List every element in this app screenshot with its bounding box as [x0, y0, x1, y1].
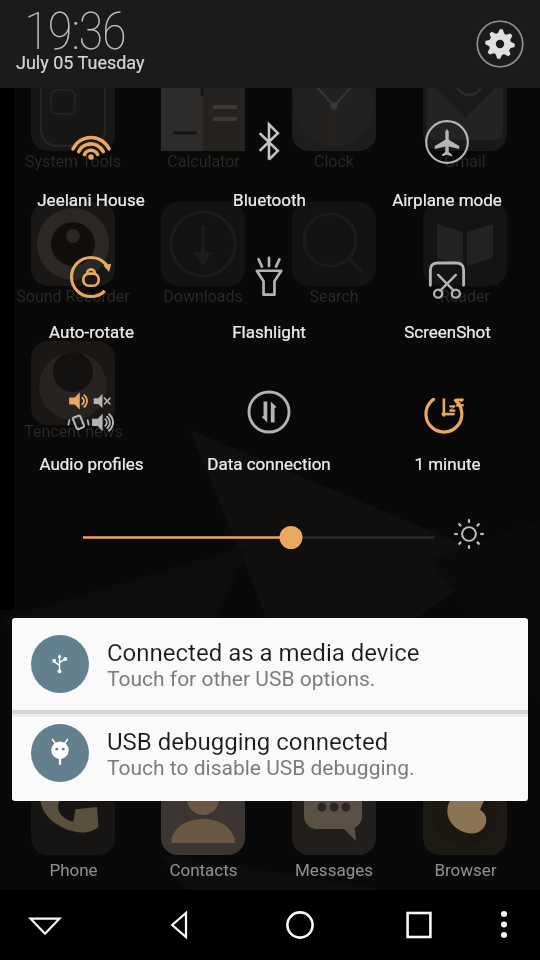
staticText: ScreenShot: [404, 322, 491, 342]
staticText: Bluetooth: [233, 190, 306, 210]
button[interactable]: Data connection: [180, 364, 358, 474]
button[interactable]: Audio profiles: [2, 364, 180, 474]
staticText: Downloads: [163, 287, 243, 306]
staticText: Audio profiles: [39, 454, 144, 474]
button[interactable]: Brightness: [0, 500, 540, 575]
button[interactable]: 1 minute: [358, 364, 536, 474]
staticText: Sound Recorder: [16, 287, 130, 306]
staticText: 19:36: [24, 1, 126, 62]
staticText: System Tools: [25, 152, 121, 171]
staticText: Contacts: [169, 860, 238, 880]
button[interactable]: Home: [258, 890, 342, 960]
staticText: Connected as a media device: [107, 639, 420, 667]
staticText: Jeelani House: [37, 190, 145, 210]
button[interactable]: Auto-rotate: [2, 229, 180, 339]
button[interactable]: Airplane mode: [358, 94, 536, 204]
button[interactable]: USB debugging connected: [12, 717, 528, 801]
button[interactable]: More: [462, 890, 540, 960]
staticText: Clock: [314, 152, 354, 171]
staticText: July 05 Tuesday: [16, 52, 145, 73]
button[interactable]: Connected as a media device: [12, 618, 528, 710]
button[interactable]: Flashlight: [180, 229, 358, 339]
staticText: Search: [309, 287, 359, 306]
staticText: Touch to disable USB debugging.: [107, 756, 415, 781]
staticText: Phone: [49, 860, 98, 880]
staticText: Browser: [434, 860, 497, 880]
button[interactable]: Bluetooth: [180, 94, 358, 204]
staticText: Flashlight: [232, 322, 306, 342]
button[interactable]: ScreenShot: [358, 229, 536, 339]
button[interactable]: Hide: [3, 890, 87, 960]
button[interactable]: Back: [138, 890, 222, 960]
staticText: Auto-rotate: [49, 322, 134, 342]
staticText: Airplane mode: [392, 190, 502, 210]
staticText: Gmail: [444, 152, 486, 171]
staticText: Messages: [295, 860, 373, 880]
button[interactable]: Settings: [476, 20, 524, 68]
staticText: Data connection: [207, 454, 331, 474]
button[interactable]: Jeelani House: [2, 94, 180, 204]
staticText: Tencent news: [24, 422, 123, 441]
staticText: 1 minute: [414, 454, 481, 474]
button[interactable]: Recents: [377, 890, 461, 960]
staticText: Touch for other USB options.: [107, 667, 376, 692]
staticText: Reader: [440, 287, 490, 306]
staticText: USB debugging connected: [107, 728, 389, 756]
staticText: Calculator: [167, 152, 240, 171]
